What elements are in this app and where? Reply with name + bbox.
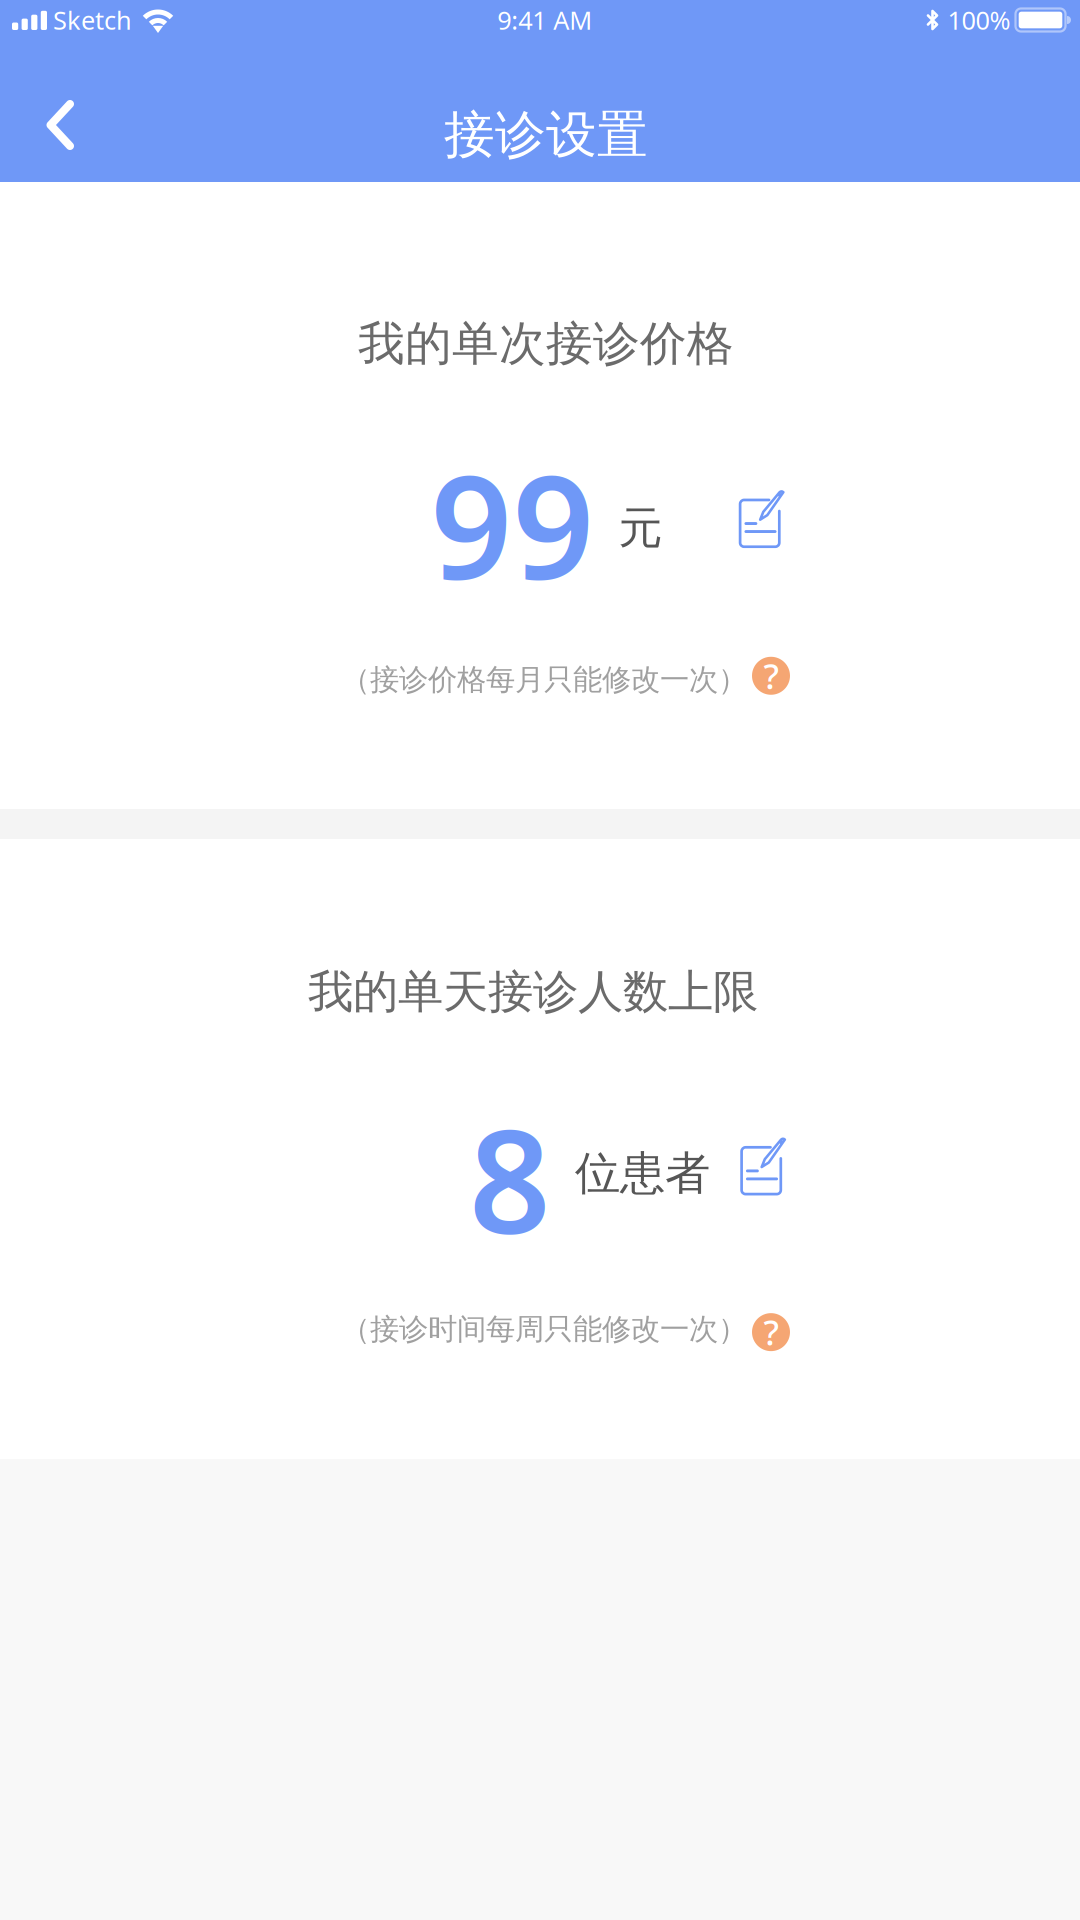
staticText: ? xyxy=(763,653,778,699)
staticText: 我的单天接诊人数上限 xyxy=(308,964,758,1020)
staticText: 8 xyxy=(469,1084,551,1273)
button[interactable]: Back xyxy=(0,60,109,162)
staticText: 100% xyxy=(947,3,1010,37)
button[interactable]: Edit xyxy=(740,1139,785,1196)
staticText: ? xyxy=(763,1309,778,1355)
button[interactable]: Help xyxy=(752,657,790,695)
staticText: 位患者 xyxy=(575,1146,710,1201)
staticText: Sketch xyxy=(53,3,132,37)
staticText: 元 xyxy=(618,501,662,555)
staticText: 9:41 AM xyxy=(497,3,592,37)
staticText: （接诊价格每月只能修改一次） xyxy=(341,662,747,698)
staticText: 99 xyxy=(430,429,594,619)
staticText: 我的单次接诊价格 xyxy=(358,315,734,372)
button[interactable]: Help xyxy=(752,1313,790,1351)
button[interactable]: Edit xyxy=(738,491,783,548)
staticText: （接诊时间每周只能修改一次） xyxy=(341,1311,747,1347)
staticText: 接诊设置 xyxy=(444,104,648,166)
